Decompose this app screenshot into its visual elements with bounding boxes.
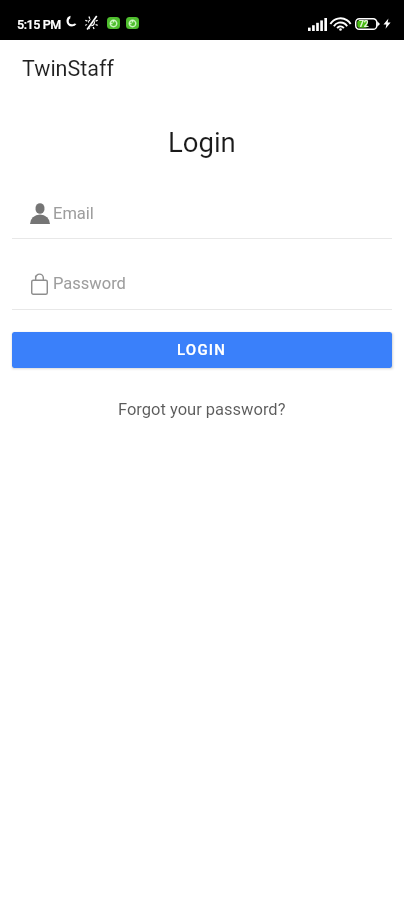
staticText: Email: [53, 204, 94, 223]
staticText: TwinStaff: [22, 56, 114, 81]
button[interactable]: Forgot your password?: [118, 400, 286, 419]
staticText: 72: [359, 19, 369, 29]
staticText: LOGIN: [177, 341, 227, 359]
button[interactable]: Email: [12, 195, 392, 239]
staticText: Login: [168, 126, 236, 158]
staticText: 5:15 PM: [17, 17, 61, 32]
staticText: Password: [53, 274, 126, 293]
button[interactable]: LOGIN: [12, 332, 392, 368]
button[interactable]: Password: [12, 266, 392, 310]
